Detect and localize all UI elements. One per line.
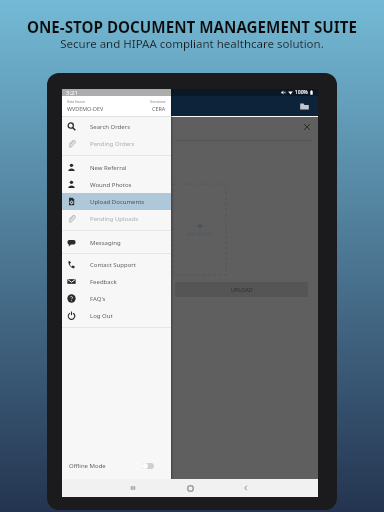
- button[interactable]: Wound Photos: [62, 176, 171, 193]
- button[interactable]: Back: [237, 479, 255, 497]
- button[interactable]: Upload Documents: [62, 193, 171, 210]
- button[interactable]: Messaging: [62, 234, 171, 251]
- staticText: Data Source: [67, 100, 86, 104]
- button[interactable]: Feedback: [62, 273, 171, 290]
- staticText: 100%: [295, 89, 308, 96]
- staticText: WVDEMO-DEV: [67, 105, 104, 112]
- button[interactable]: Recents: [124, 479, 142, 497]
- staticText: Upload Documents: [90, 198, 145, 206]
- button[interactable]: FAQ's: [62, 290, 171, 307]
- button[interactable]: Folder: [296, 98, 312, 114]
- staticText: Username: [150, 100, 166, 104]
- staticText: Feedback: [90, 278, 117, 286]
- staticText: CERA: [152, 105, 166, 112]
- staticText: Search Orders: [90, 123, 131, 131]
- staticText: ONE-STOP DOCUMENT MANAGEMENT SUITE: [0, 17, 384, 38]
- button[interactable]: Contact Support: [62, 256, 171, 273]
- button[interactable]: Close: [299, 119, 315, 135]
- staticText: Log Out: [90, 312, 113, 320]
- staticText: Messaging: [90, 239, 121, 247]
- staticText: Contact Support: [90, 261, 136, 269]
- staticText: Pending Uploads: [90, 215, 139, 223]
- staticText: Offline Mode: [69, 462, 106, 470]
- staticText: Add Photo: [187, 231, 212, 238]
- staticText: 3:21: [66, 89, 78, 96]
- staticText: Wound Photos: [90, 181, 132, 189]
- button[interactable]: Home: [181, 479, 199, 497]
- staticText: FAQ's: [90, 295, 106, 303]
- button[interactable]: Pending Uploads: [62, 210, 171, 227]
- staticText: New Referral: [90, 164, 127, 172]
- staticText: UPLOAD: [231, 286, 253, 293]
- staticText: Pending Orders: [90, 140, 135, 148]
- button[interactable]: Search Orders: [62, 118, 171, 135]
- staticText: Secure and HIPAA compliant healthcare so…: [0, 36, 384, 52]
- button[interactable]: Log Out: [62, 307, 171, 324]
- button[interactable]: Offline Mode: [62, 455, 171, 477]
- button[interactable]: New Referral: [62, 159, 171, 176]
- button[interactable]: Pending Orders: [62, 135, 171, 152]
